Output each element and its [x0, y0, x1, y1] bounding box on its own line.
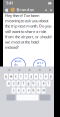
staticText: v	[28, 89, 29, 92]
button[interactable]: w	[9, 73, 13, 79]
button[interactable]: r	[19, 73, 23, 79]
staticText: r	[20, 75, 21, 78]
button[interactable]: h	[31, 80, 35, 86]
button[interactable]: x	[16, 87, 20, 93]
staticText: u	[35, 75, 37, 78]
button[interactable]: v	[26, 87, 30, 93]
button[interactable]: a	[6, 80, 10, 86]
button[interactable]: y	[29, 73, 33, 79]
staticText: Brandon	[16, 7, 34, 12]
staticText: f	[23, 82, 24, 85]
staticText: o	[45, 75, 47, 78]
button[interactable]: k	[41, 80, 45, 86]
staticText: k	[43, 82, 44, 85]
staticText: y	[30, 75, 31, 78]
staticText: c	[23, 89, 24, 92]
button[interactable]: c	[21, 87, 25, 93]
button[interactable]: l	[46, 80, 50, 86]
staticText: s	[13, 82, 14, 85]
staticText: q	[5, 75, 7, 78]
button[interactable]: t	[24, 73, 28, 79]
staticText: e	[15, 75, 17, 78]
button[interactable]: Back	[5, 6, 9, 13]
staticText: l	[48, 82, 49, 85]
staticText: Hey there! I've been meaning to ask you …	[5, 13, 51, 50]
button[interactable]: f	[21, 80, 25, 86]
staticText: i	[40, 75, 41, 78]
staticText: j	[38, 82, 39, 85]
button[interactable]: Return	[39, 94, 50, 100]
staticText: ▮▮▮	[48, 1, 51, 4]
staticText: Sounds good	[14, 59, 22, 70]
button[interactable]: g	[26, 80, 30, 86]
staticText: b	[32, 89, 34, 92]
button[interactable]: i	[39, 73, 43, 79]
button[interactable]: j	[36, 80, 40, 86]
staticText: p	[50, 75, 52, 78]
button[interactable]: p	[49, 73, 53, 79]
button[interactable]: b	[31, 87, 35, 93]
button[interactable]: Numbers	[6, 94, 15, 100]
button[interactable]: Let's talk	[34, 60, 46, 70]
staticText: w	[10, 75, 12, 78]
staticText: d	[17, 82, 19, 85]
staticText: h	[32, 82, 34, 85]
button[interactable]: Sounds good	[11, 58, 25, 72]
staticText: m	[42, 89, 44, 92]
button[interactable]: e	[14, 73, 18, 79]
staticText: g	[27, 82, 29, 85]
button[interactable]: d	[16, 80, 20, 86]
staticText: x	[18, 89, 19, 92]
button[interactable]: n	[36, 87, 40, 93]
staticText: Let's talk	[37, 61, 43, 68]
staticText: 9:41	[6, 0, 13, 6]
button[interactable]: o	[44, 73, 48, 79]
staticText: z	[13, 89, 14, 92]
staticText: n	[37, 89, 39, 92]
button[interactable]: z	[11, 87, 15, 93]
button[interactable]: q	[4, 73, 8, 79]
button[interactable]: m	[41, 87, 45, 93]
button[interactable]: s	[11, 80, 15, 86]
button[interactable]: Space	[16, 94, 38, 100]
staticText: a	[8, 82, 9, 85]
button[interactable]: u	[34, 73, 38, 79]
staticText: ‹	[6, 4, 8, 15]
